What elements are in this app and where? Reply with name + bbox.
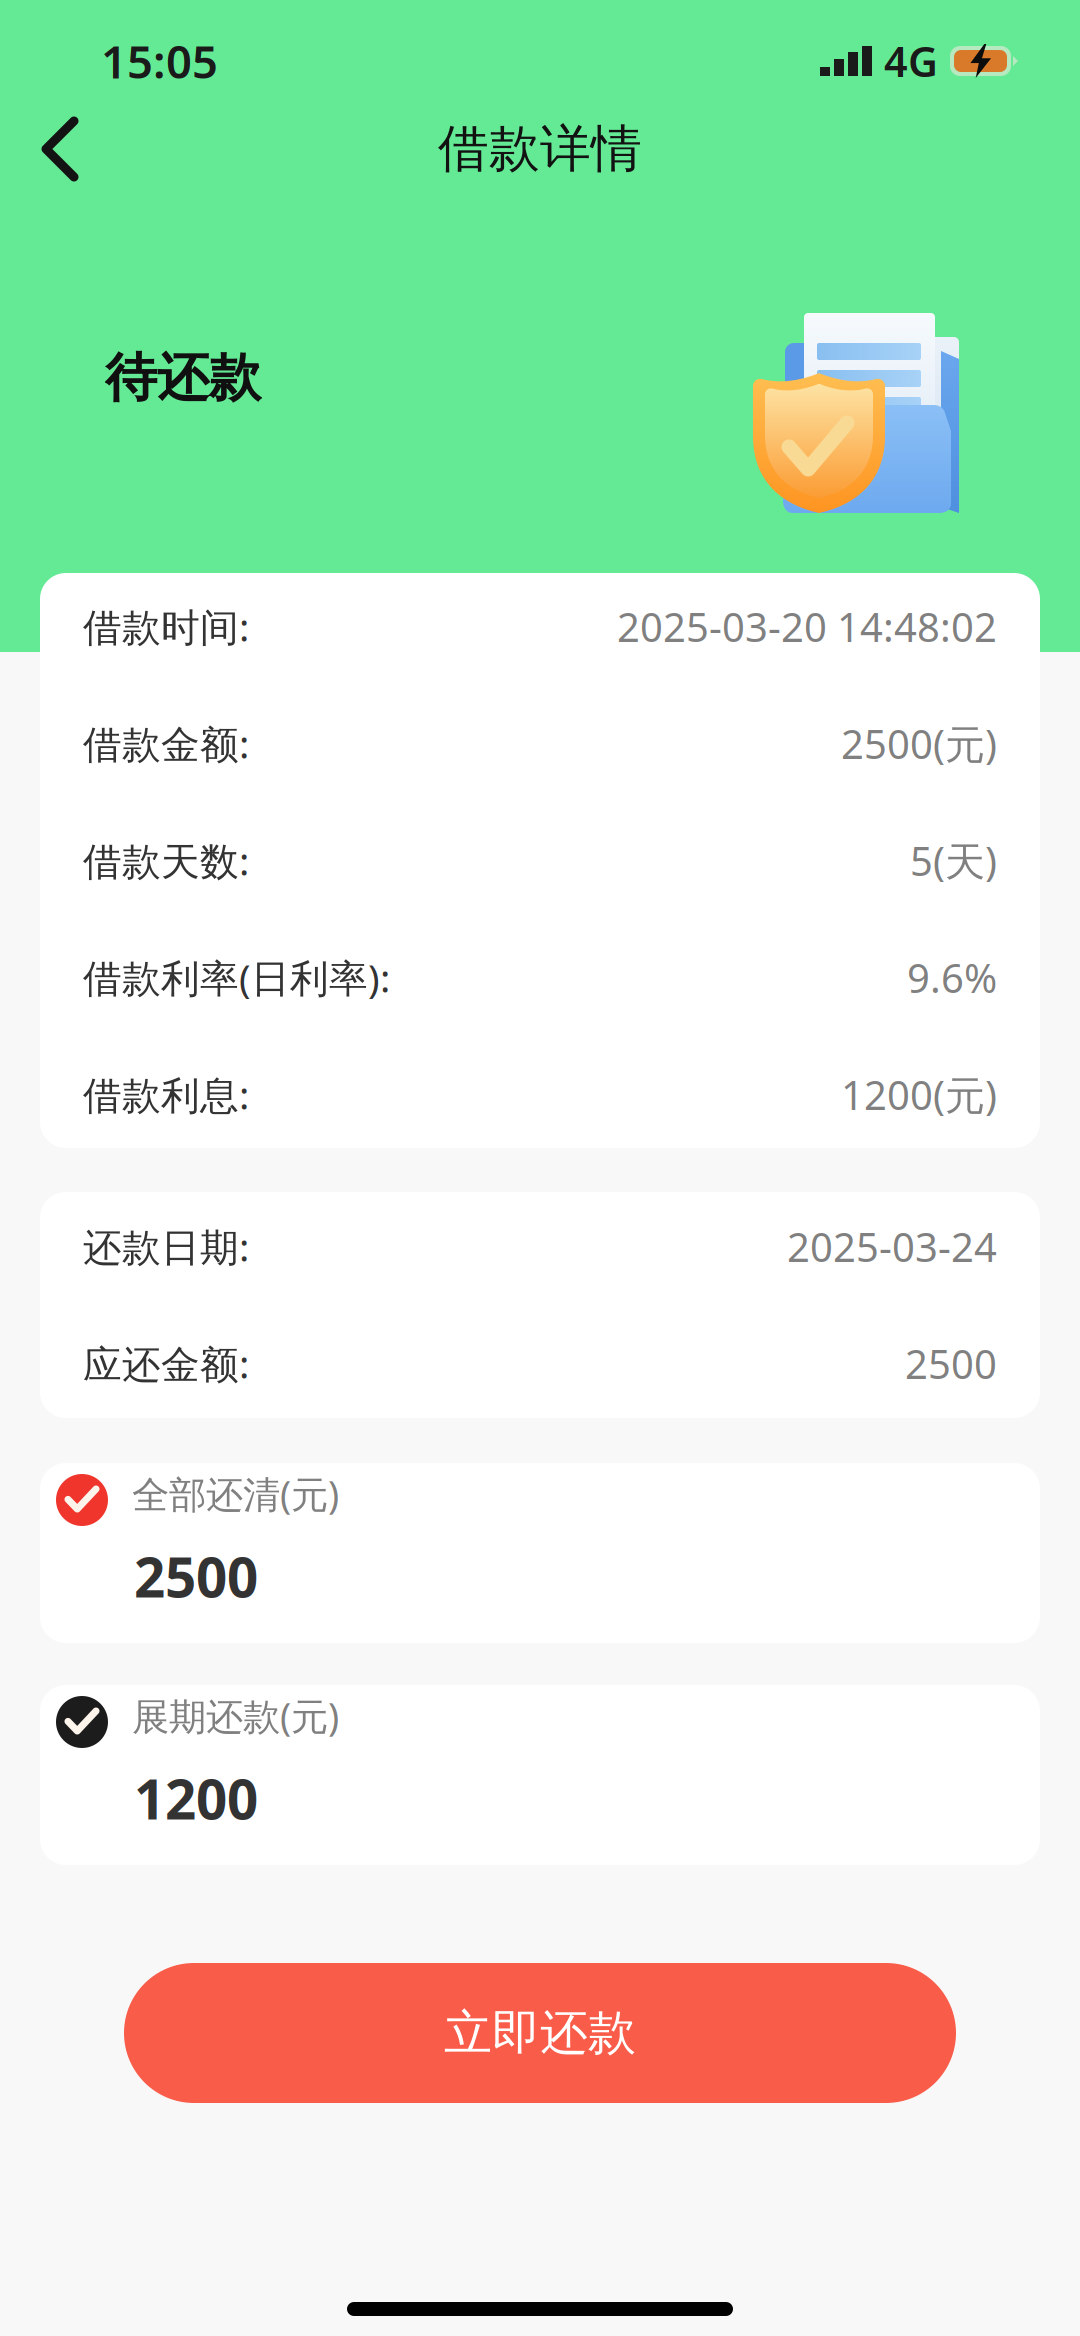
button[interactable]: 展期还款(元) (40, 1685, 1040, 1865)
staticText: 借款金额: (83, 718, 249, 769)
staticText: 借款时间: (83, 601, 249, 652)
staticText: 待还款 (105, 346, 261, 410)
staticText: 2025-03-24 (787, 1220, 997, 1273)
staticText: 1200(元) (841, 1068, 997, 1121)
button[interactable]: Back (0, 96, 110, 202)
button[interactable]: 全部还清(元) (40, 1463, 1040, 1643)
staticText: 全部还清(元) (132, 1469, 339, 1519)
staticText: 2500 (905, 1337, 997, 1390)
staticText: 5(天) (910, 834, 997, 887)
button[interactable]: 立即还款 (124, 1963, 956, 2103)
staticText: 立即还款 (444, 2003, 636, 2062)
staticText: 借款天数: (83, 835, 249, 886)
staticText: 应还金额: (83, 1338, 249, 1389)
staticText: 2025-03-20 14:48:02 (617, 600, 997, 653)
staticText: 9.6% (907, 951, 997, 1004)
staticText: 还款日期: (83, 1221, 249, 1272)
staticText: 1200 (134, 1762, 258, 1835)
staticText: 借款利息: (83, 1069, 249, 1120)
staticText: 借款详情 (438, 118, 642, 180)
staticText: 2500(元) (841, 717, 997, 770)
staticText: 2500 (134, 1540, 258, 1613)
staticText: 展期还款(元) (132, 1691, 339, 1741)
staticText: 15:05 (101, 31, 218, 91)
staticText: 4G (884, 34, 938, 88)
staticText: 借款利率(日利率): (83, 952, 390, 1003)
